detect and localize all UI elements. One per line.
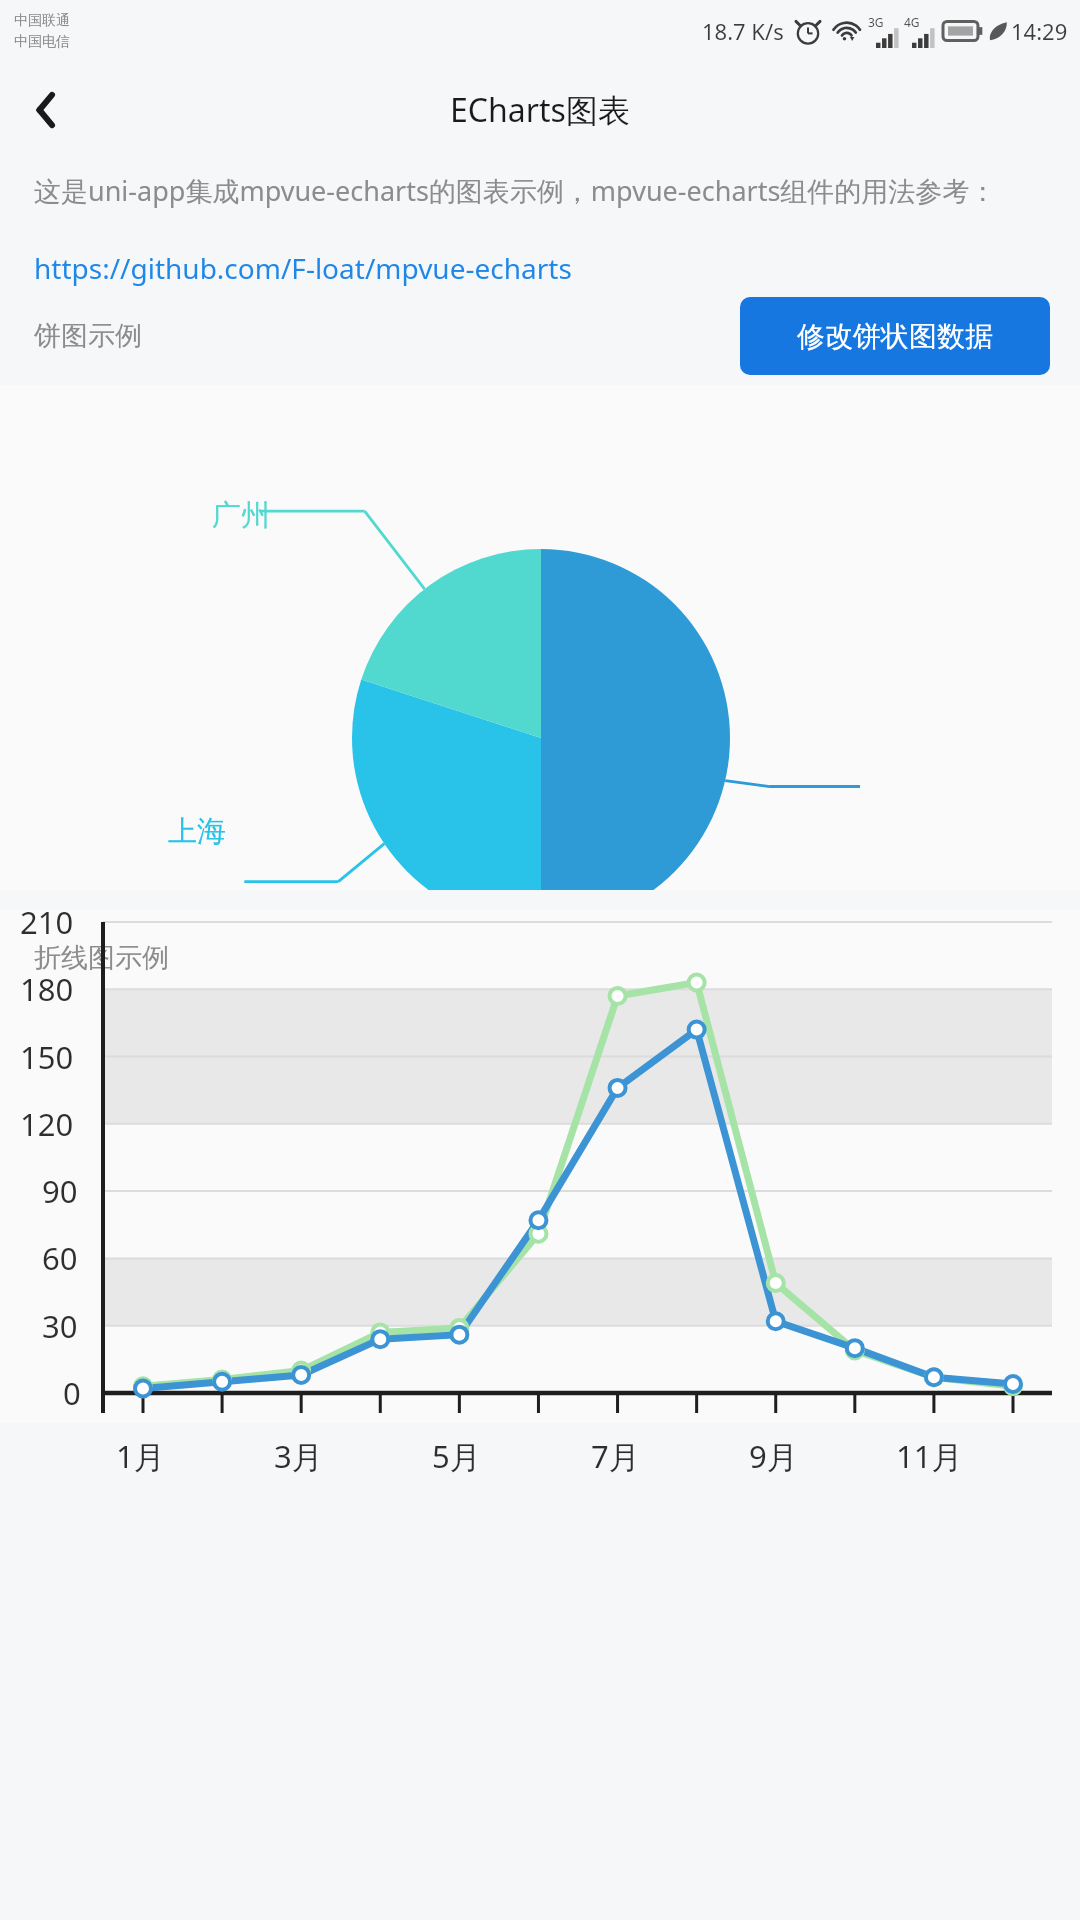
staticText: 120 — [20, 1103, 74, 1145]
staticText: 150 — [20, 1036, 74, 1078]
staticText: 210 — [20, 901, 74, 943]
button[interactable]: Back — [12, 75, 82, 145]
staticText: 修改饼状图数据 — [797, 319, 993, 354]
staticText: 7月 — [591, 1435, 640, 1477]
staticText: 4G — [904, 14, 920, 30]
staticText: 饼图示例 — [34, 319, 142, 353]
staticText: 5月 — [432, 1435, 481, 1477]
staticText: 3G — [868, 14, 884, 30]
button[interactable]: https://github.com/F-loat/mpvue-echarts — [34, 249, 572, 287]
staticText: 30 — [42, 1305, 78, 1347]
staticText: 上海 — [168, 813, 226, 850]
staticText: 9月 — [749, 1435, 798, 1477]
staticText: 这是uni-app集成mpvue-echarts的图表示例，mpvue-echa… — [34, 172, 997, 209]
staticText: 18.7 K/s — [702, 16, 784, 46]
button[interactable]: 修改饼状图数据 — [740, 297, 1050, 375]
staticText: 广州 — [212, 497, 270, 534]
staticText: ECharts图表 — [450, 88, 630, 132]
staticText: 180 — [20, 968, 74, 1010]
staticText: https://github.com/F-loat/mpvue-echarts — [34, 249, 572, 287]
staticText: 3月 — [274, 1435, 323, 1477]
staticText: 中国电信 — [14, 33, 70, 51]
staticText: 90 — [42, 1170, 78, 1212]
staticText: 14:29 — [1011, 16, 1068, 46]
staticText: 60 — [42, 1237, 78, 1279]
staticText: 折线图示例 — [34, 941, 169, 975]
staticText: 11月 — [896, 1435, 963, 1477]
staticText: 0 — [63, 1372, 81, 1414]
staticText: 1月 — [116, 1435, 165, 1477]
staticText: 中国联通 — [14, 12, 70, 30]
